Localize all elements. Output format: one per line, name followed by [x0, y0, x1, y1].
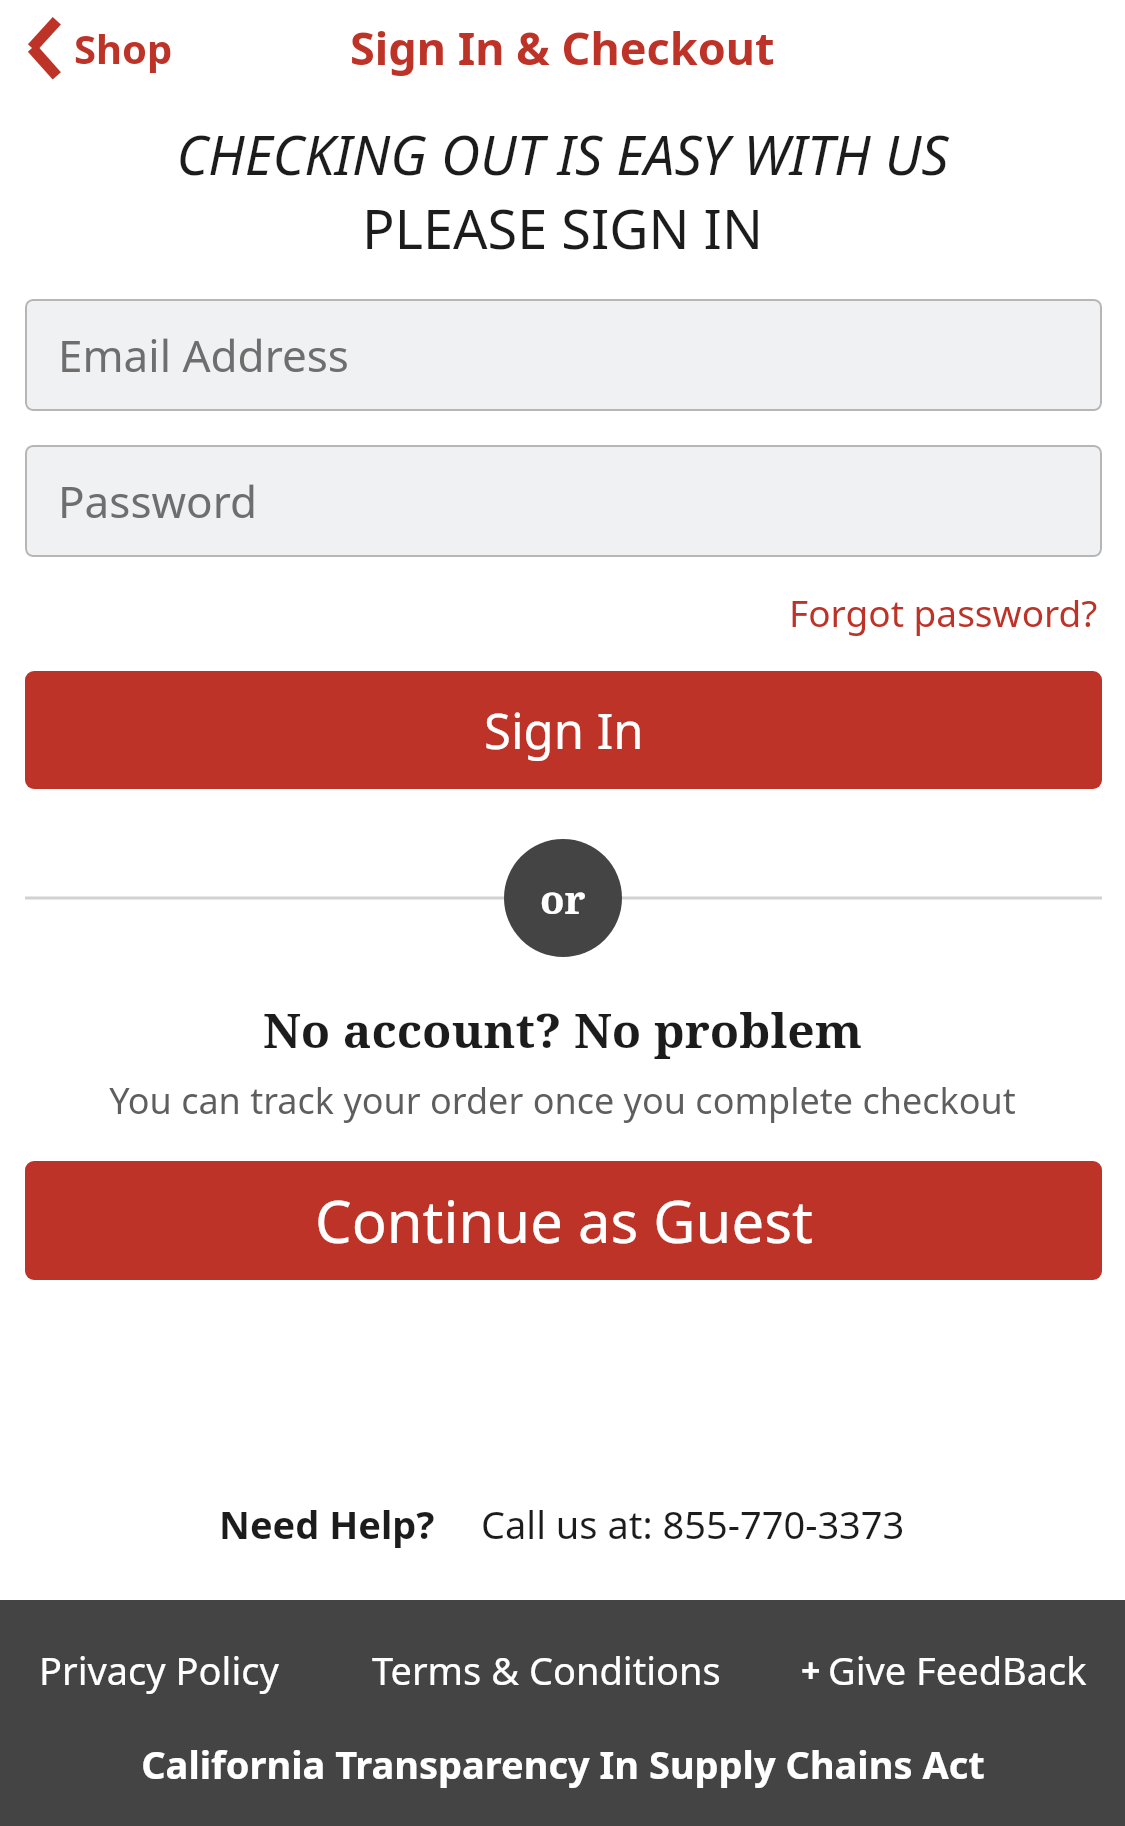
staticText: Email Address — [58, 325, 349, 385]
staticText: Forgot password? — [789, 587, 1098, 637]
staticText: Give FeedBack — [828, 1644, 1087, 1696]
staticText: Continue as Guest — [315, 1181, 813, 1260]
button[interactable]: Back to Shop — [18, 11, 179, 85]
other: Back to Shop — [24, 17, 64, 79]
staticText: Need Help? — [219, 1498, 435, 1550]
staticText: You can track your order once you comple… — [0, 1076, 1125, 1125]
button[interactable]: Continue as Guest — [25, 1161, 1102, 1280]
staticText: No account? No problem — [0, 997, 1125, 1062]
staticText: Password — [58, 471, 258, 531]
staticText: Sign In & Checkout — [350, 17, 775, 78]
button[interactable]: + — [797, 1638, 1091, 1702]
button[interactable]: Sign In — [25, 671, 1102, 789]
staticText: + — [801, 1647, 821, 1693]
staticText: Terms & Conditions — [372, 1644, 721, 1696]
staticText: Call us at: 855-770-3373 — [481, 1498, 905, 1550]
button[interactable]: Forgot password? — [785, 581, 1102, 643]
button[interactable]: Call us at: 855-770-3373 — [479, 1494, 907, 1554]
button[interactable]: Password — [25, 445, 1102, 557]
staticText: PLEASE SIGN IN — [0, 191, 1125, 265]
button[interactable]: California Transparency In Supply Chains… — [135, 1732, 991, 1796]
button[interactable]: Email Address — [25, 299, 1102, 411]
button[interactable]: Terms & Conditions — [368, 1638, 725, 1702]
staticText: Privacy Policy — [39, 1644, 279, 1696]
staticText: California Transparency In Supply Chains… — [141, 1738, 985, 1790]
button[interactable]: Privacy Policy — [35, 1638, 283, 1702]
staticText: Sign In — [484, 697, 644, 764]
staticText: CHECKING OUT IS EASY WITH US — [0, 117, 1125, 191]
staticText: or — [540, 871, 586, 925]
staticText: Shop — [74, 21, 173, 75]
